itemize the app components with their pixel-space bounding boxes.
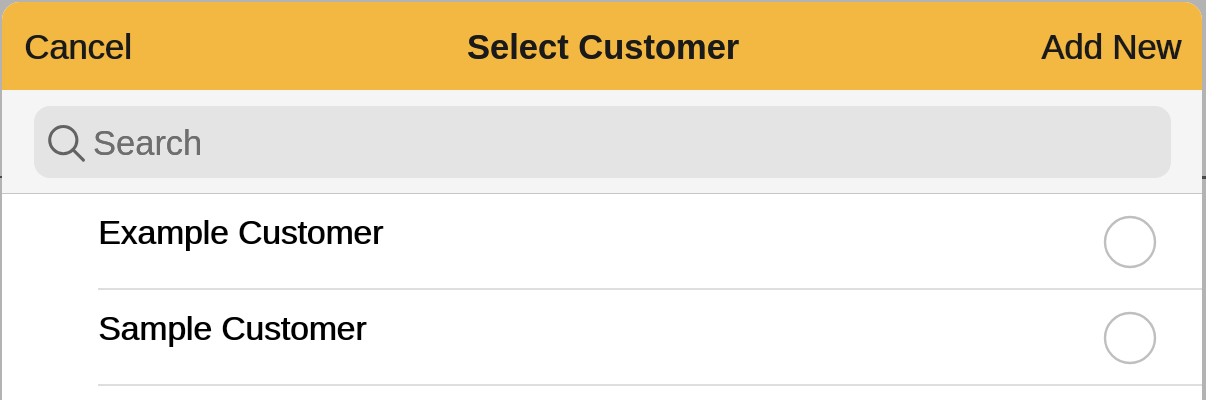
staticText: Search [93, 124, 203, 163]
staticText: Add New [1042, 28, 1182, 67]
button[interactable]: Cancel [2, 2, 156, 90]
other: Search [48, 120, 88, 164]
button[interactable]: Example Customer [2, 194, 1202, 290]
staticText: Example Customer [99, 214, 384, 251]
staticText: Example Customer [98, 214, 383, 251]
staticText: Cancel [25, 28, 133, 67]
staticText: Select Customer [467, 28, 740, 67]
staticText: Select Customer [467, 28, 740, 67]
button[interactable]: Sample Customer [2, 290, 1202, 386]
button[interactable]: Add New [1019, 2, 1202, 90]
staticText: Add New [1041, 28, 1181, 67]
staticText: Sample Customer [98, 310, 367, 347]
staticText: Cancel [24, 28, 132, 67]
button[interactable]: Search [34, 106, 1171, 178]
staticText: Sample Customer [99, 310, 368, 347]
staticText: Search [93, 124, 203, 163]
